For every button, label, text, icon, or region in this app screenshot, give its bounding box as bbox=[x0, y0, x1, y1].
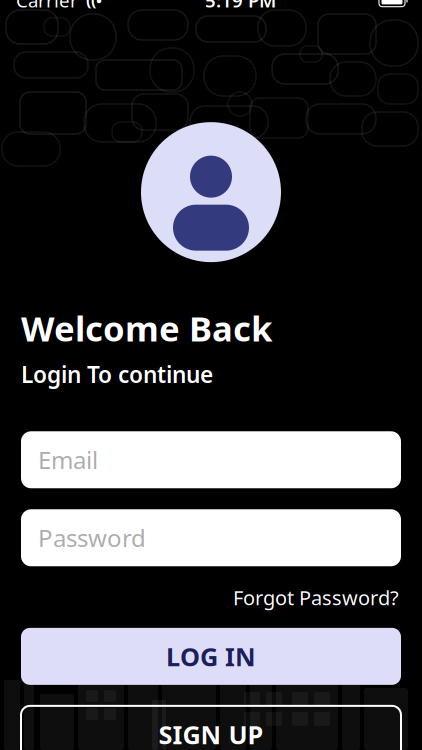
button[interactable]: Email bbox=[21, 431, 401, 488]
staticText: SIGN UP bbox=[158, 717, 263, 750]
staticText: Forgot Password? bbox=[233, 584, 399, 611]
staticText: Email bbox=[38, 444, 98, 476]
button[interactable]: Password bbox=[21, 509, 401, 566]
staticText: Carrier bbox=[16, 0, 78, 13]
button[interactable]: LOG IN bbox=[21, 628, 401, 685]
button[interactable]: Forgot Password? bbox=[231, 580, 401, 615]
staticText: Password bbox=[38, 522, 146, 554]
staticText: Welcome Back bbox=[21, 305, 272, 351]
staticText: 5:19 PM bbox=[205, 0, 276, 13]
staticText: Login To continue bbox=[21, 359, 213, 389]
staticText: LOG IN bbox=[166, 639, 256, 673]
button[interactable]: SIGN UP bbox=[21, 706, 401, 750]
staticText: ((• bbox=[78, 0, 102, 11]
